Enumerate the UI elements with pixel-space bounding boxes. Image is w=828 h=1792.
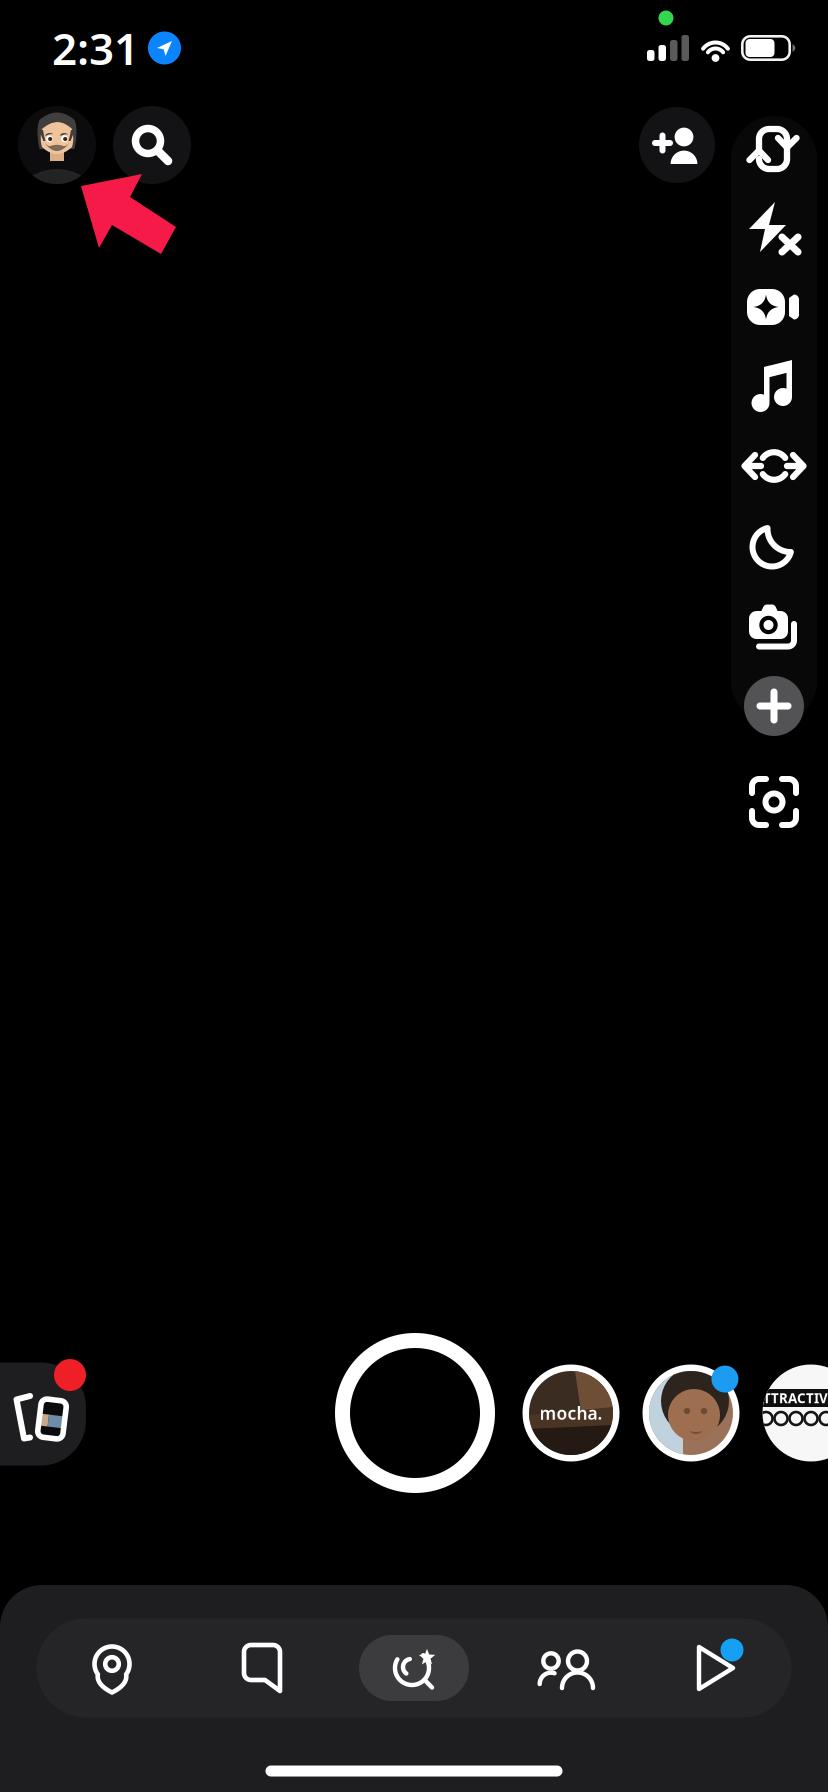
staticText: 2:31	[52, 19, 139, 77]
staticText: mocha.	[539, 1401, 602, 1424]
button[interactable]: Camera	[338, 1618, 489, 1717]
button[interactable]: Scan	[731, 759, 817, 845]
button[interactable]: Chat	[187, 1618, 338, 1717]
button[interactable]: Flash off	[731, 188, 817, 268]
staticText: ATTRACTIVENESS	[755, 1389, 828, 1407]
button[interactable]: Night mode	[731, 506, 817, 586]
button[interactable]: Spotlight	[640, 1618, 791, 1717]
button[interactable]: More lenses	[731, 666, 817, 746]
button[interactable]: Story mocha	[522, 1364, 619, 1461]
button[interactable]: Capture	[335, 1333, 495, 1493]
button[interactable]: Story attractiveness	[762, 1364, 828, 1461]
button[interactable]: Memories	[0, 1362, 86, 1465]
button[interactable]: Story friend	[642, 1364, 739, 1461]
button[interactable]: Friends	[489, 1618, 640, 1717]
button[interactable]: Music	[731, 346, 817, 426]
button[interactable]: Add friends	[639, 107, 715, 183]
button[interactable]: Map	[36, 1618, 187, 1717]
button[interactable]: Timer	[731, 586, 817, 666]
button[interactable]: Flip camera	[731, 109, 817, 189]
button[interactable]: Video effects	[731, 267, 817, 347]
button[interactable]: Rotate	[731, 426, 817, 506]
button[interactable]: Profile	[18, 106, 96, 184]
button[interactable]: Search	[113, 106, 191, 184]
